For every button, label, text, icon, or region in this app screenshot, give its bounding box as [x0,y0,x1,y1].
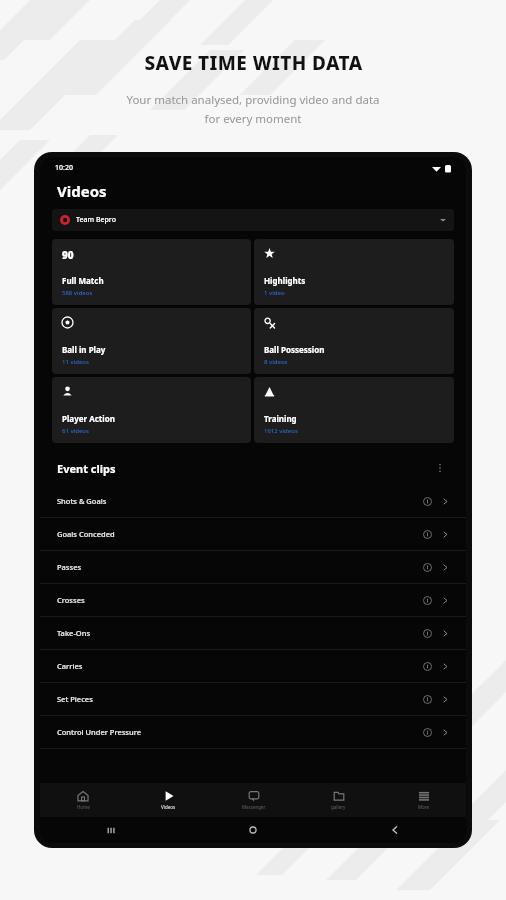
staticText: Ball in Play [62,344,106,355]
button[interactable]: Carries [40,650,466,682]
staticText: Messenger [242,804,266,810]
button[interactable]: More options [431,459,449,477]
staticText: 10:20 [55,163,73,173]
staticText: 1 video [264,289,285,297]
staticText: Full Match [62,275,104,286]
staticText: Carries [57,661,83,671]
button[interactable]: Shots & Goals [40,485,466,517]
staticText: Ball Possession [264,344,325,355]
staticText: Crosses [57,595,85,605]
staticText: Videos [57,181,107,201]
staticText: Goals Conceded [57,529,115,539]
button[interactable]: Crosses [40,584,466,616]
staticText: Highlights [264,275,306,286]
staticText: Control Under Pressure [57,727,142,737]
staticText: Your match analysed, providing video and… [126,92,380,126]
staticText: Take-Ons [57,628,91,638]
button[interactable]: Team Bepro [52,209,454,231]
button[interactable]: Goals Conceded [40,518,466,550]
button[interactable]: Videos [126,783,211,817]
staticText: gallery [331,804,346,810]
button[interactable]: More [381,783,466,817]
staticText: 8 videos [264,358,288,366]
button[interactable]: Player Action [52,377,251,443]
button[interactable]: Set Pieces [40,683,466,715]
button[interactable]: Back [324,817,466,843]
button[interactable]: gallery [296,783,381,817]
staticText: Player Action [62,413,115,424]
button[interactable]: Passes [40,551,466,583]
staticText: Shots & Goals [57,496,107,506]
staticText: SAVE TIME WITH DATA [144,50,363,76]
staticText: Videos [161,804,176,810]
staticText: 1612 videos [264,427,298,435]
staticText: Training [264,413,297,424]
button[interactable]: Messenger [211,783,296,817]
staticText: Passes [57,562,82,572]
staticText: Team Bepro [76,215,116,225]
staticText: Set Pieces [57,694,93,704]
staticText: 61 videos [62,427,89,435]
staticText: 11 videos [62,358,89,366]
button[interactable]: Highlights [254,239,454,305]
button[interactable]: Ball in Play [52,308,251,374]
staticText: 90 [62,248,74,262]
button[interactable]: Control Under Pressure [40,716,466,748]
staticText: Home [77,804,90,810]
staticText: Event clips [57,461,116,476]
button[interactable]: 90 [52,239,251,305]
button[interactable]: Take-Ons [40,617,466,649]
staticText: 588 videos [62,289,93,297]
button[interactable]: Ball Possession [254,308,454,374]
button[interactable]: Recent apps [40,817,182,843]
button[interactable]: Home [40,783,126,817]
button[interactable]: Training [254,377,454,443]
staticText: More [418,804,430,810]
button[interactable]: Home [182,817,324,843]
